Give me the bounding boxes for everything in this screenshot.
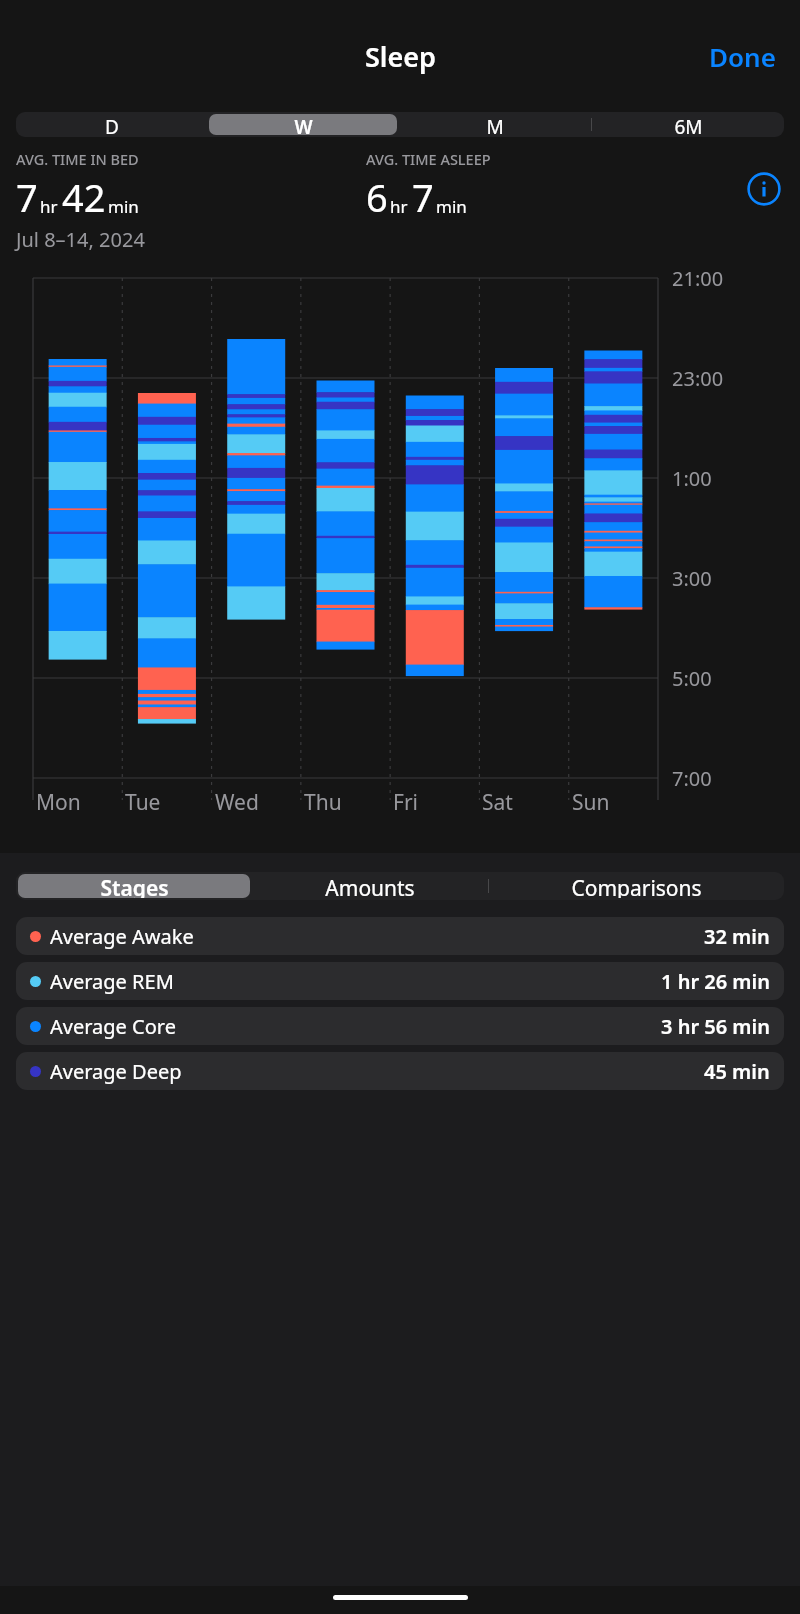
button[interactable]: 6M <box>594 114 782 135</box>
button[interactable]: M <box>401 114 589 135</box>
staticText: Sun <box>572 788 610 817</box>
staticText: AVG. TIME IN BED <box>16 149 139 169</box>
staticText: Done <box>709 39 776 74</box>
button[interactable]: Stages <box>18 874 250 898</box>
staticText: M <box>486 114 504 135</box>
staticText: 3:00 <box>672 565 712 592</box>
staticText: 21:00 <box>672 265 724 292</box>
staticText: Fri <box>393 788 418 817</box>
button[interactable]: W <box>209 114 397 135</box>
staticText: Sat <box>482 788 513 817</box>
staticText: hr <box>390 195 408 218</box>
staticText: Average Awake <box>50 923 194 950</box>
staticText: W <box>294 114 313 135</box>
staticText: Thu <box>304 788 342 817</box>
staticText: Average Core <box>50 1013 176 1040</box>
staticText: 7 <box>16 171 38 223</box>
staticText: 23:00 <box>672 365 724 392</box>
staticText: min <box>108 195 139 218</box>
staticText: min <box>436 195 467 218</box>
button[interactable]: Amounts <box>254 874 486 898</box>
button[interactable]: Average Awake <box>16 917 784 955</box>
button[interactable]: Done <box>701 33 784 80</box>
button[interactable]: About sleep data <box>744 169 784 209</box>
button[interactable]: Average Core <box>16 1007 784 1045</box>
staticText: 45 min <box>704 1058 770 1085</box>
staticText: 6 <box>366 171 388 223</box>
staticText: Wed <box>215 788 259 817</box>
staticText: Tue <box>125 788 161 817</box>
staticText: Comparisons <box>571 874 702 898</box>
button[interactable]: D <box>18 114 205 135</box>
button[interactable]: Comparisons <box>491 874 782 898</box>
staticText: Stages <box>100 874 169 898</box>
button[interactable]: Average REM <box>16 962 784 1000</box>
staticText: Average REM <box>50 968 174 995</box>
staticText: 42 <box>62 171 106 223</box>
staticText: 7:00 <box>672 765 712 792</box>
staticText: AVG. TIME ASLEEP <box>366 149 491 169</box>
staticText: Amounts <box>325 874 415 898</box>
staticText: hr <box>40 195 58 218</box>
staticText: Sleep <box>365 38 436 75</box>
staticText: Jul 8–14, 2024 <box>16 226 145 253</box>
staticText: Average Deep <box>50 1058 182 1085</box>
staticText: D <box>105 114 119 135</box>
button[interactable]: Average Deep <box>16 1052 784 1090</box>
staticText: 1 hr 26 min <box>661 968 770 995</box>
staticText: 6M <box>674 114 703 135</box>
staticText: 32 min <box>704 923 770 950</box>
staticText: 3 hr 56 min <box>661 1013 770 1040</box>
staticText: 7 <box>412 171 434 223</box>
staticText: Mon <box>36 788 81 817</box>
staticText: 5:00 <box>672 665 712 692</box>
staticText: 1:00 <box>672 465 712 492</box>
